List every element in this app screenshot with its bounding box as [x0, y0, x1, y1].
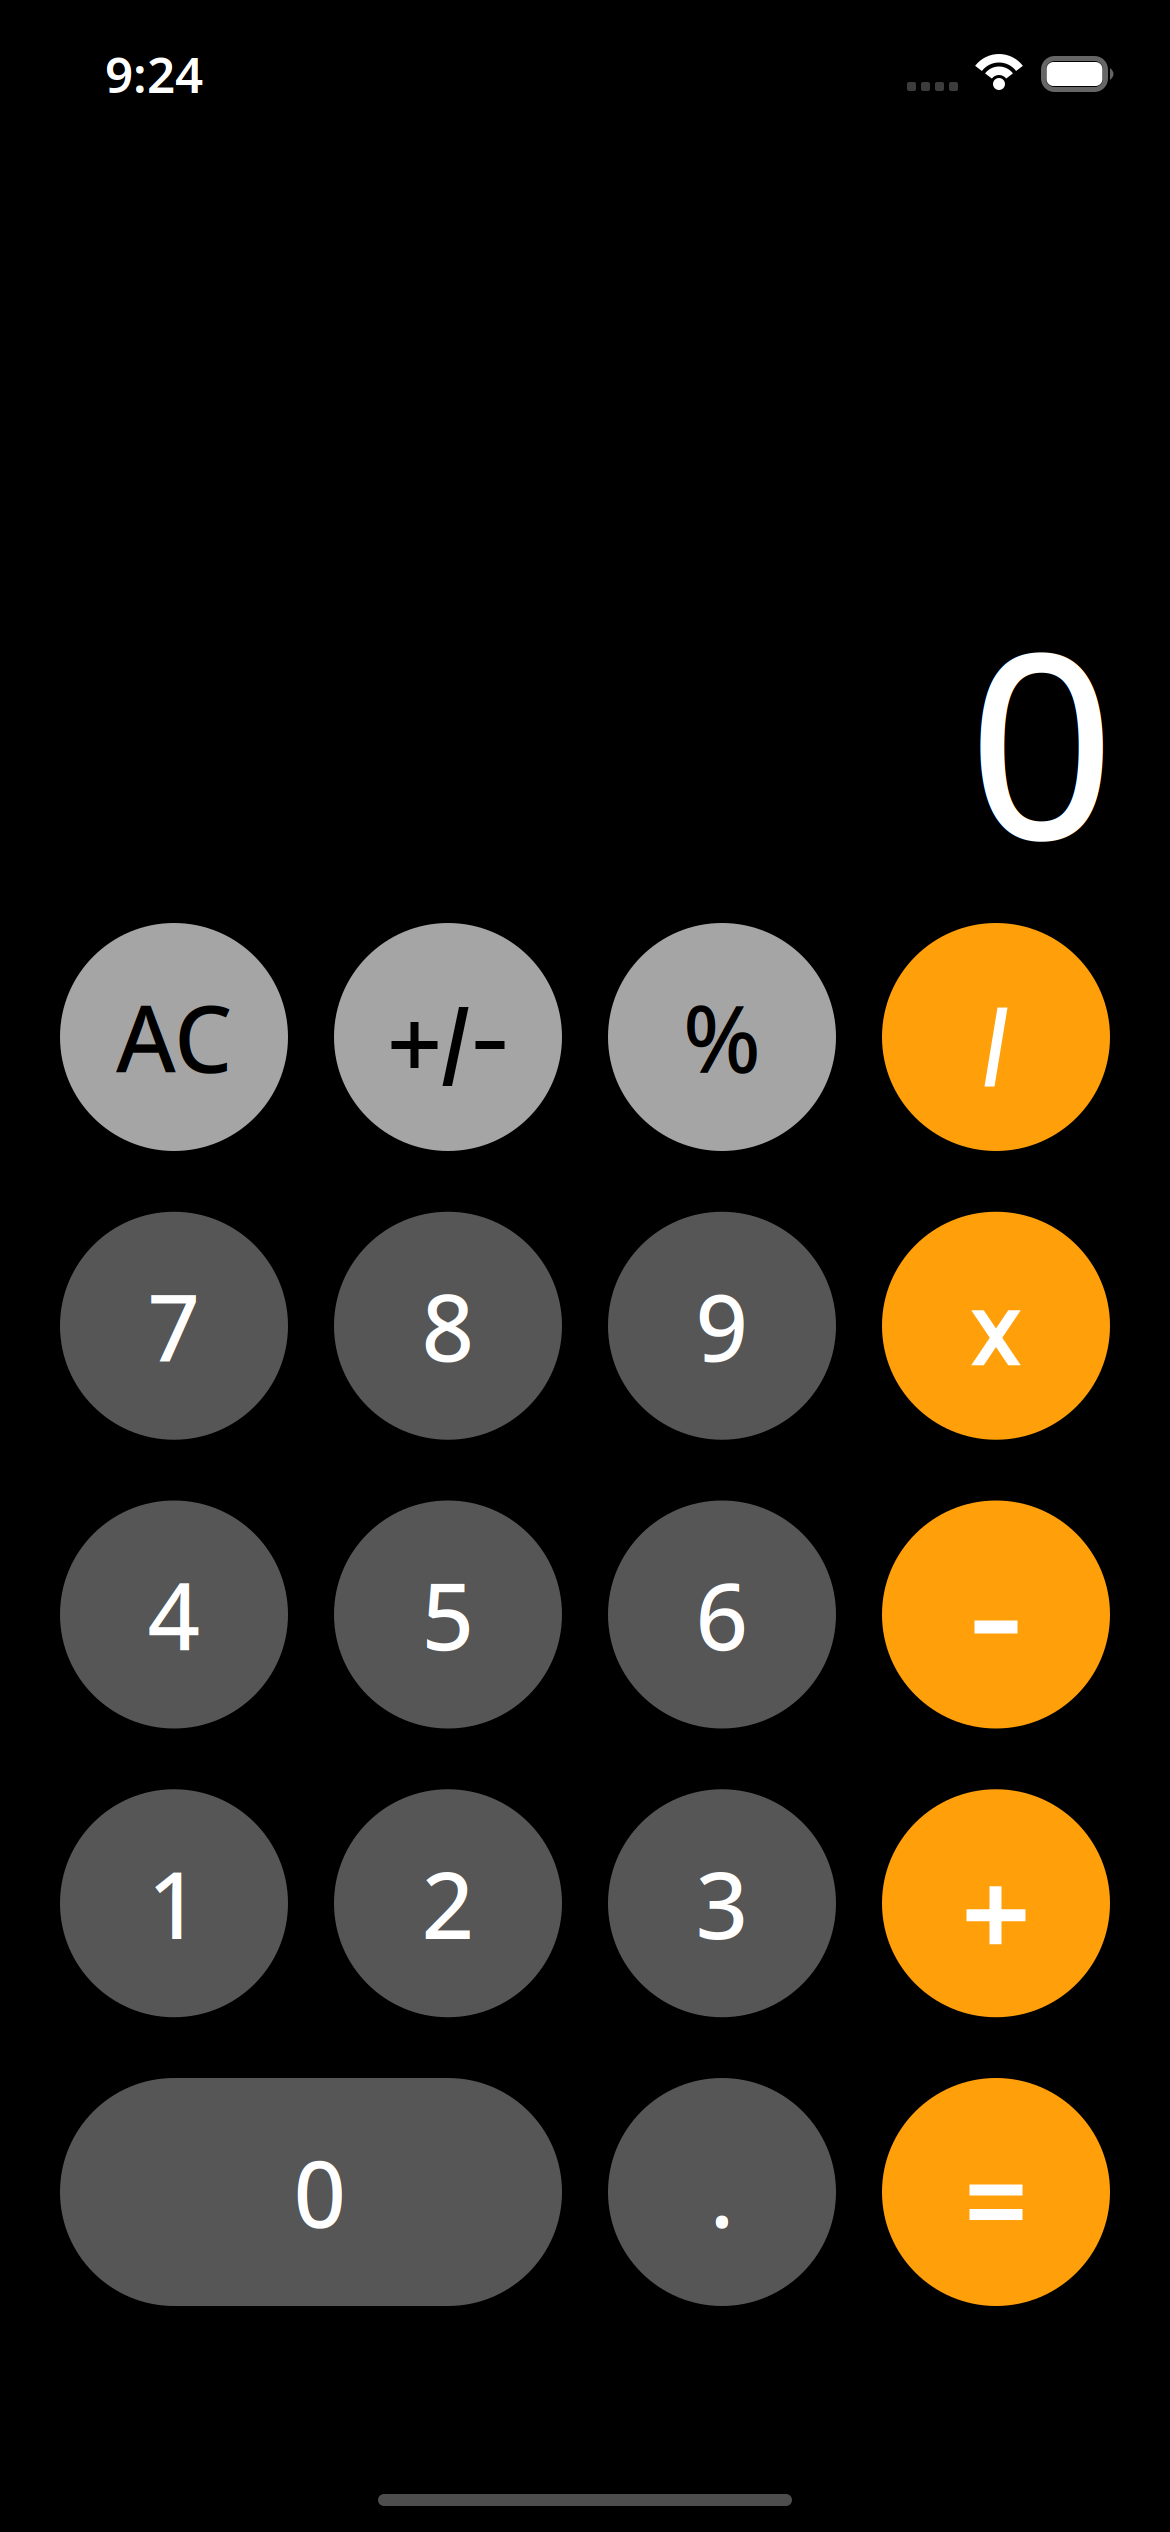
button[interactable]: Equals: [882, 2078, 1110, 2306]
staticText: 4: [147, 1552, 200, 1677]
button[interactable]: All clear: [60, 923, 288, 1151]
button[interactable]: 2: [334, 1789, 562, 2017]
button[interactable]: Multiply: [882, 1212, 1110, 1440]
staticText: 3: [695, 1841, 748, 1966]
staticText: 0: [293, 2129, 346, 2255]
button[interactable]: Decimal point: [608, 2078, 836, 2306]
button[interactable]: 7: [60, 1212, 288, 1440]
button[interactable]: 9: [608, 1212, 836, 1440]
staticText: .: [709, 2129, 734, 2255]
staticText: 6: [695, 1552, 748, 1677]
button[interactable]: 3: [608, 1789, 836, 2017]
button[interactable]: 1: [60, 1789, 288, 2017]
staticText: 7: [147, 1263, 200, 1388]
button[interactable]: Percent: [608, 923, 836, 1151]
button[interactable]: Add: [882, 1789, 1110, 2017]
button[interactable]: 4: [60, 1500, 288, 1728]
staticText: 8: [421, 1263, 474, 1388]
button[interactable]: 6: [608, 1500, 836, 1728]
staticText: 0: [968, 564, 1115, 914]
button[interactable]: 0: [60, 2078, 562, 2306]
button[interactable]: Plus minus: [334, 923, 562, 1151]
button[interactable]: 8: [334, 1212, 562, 1440]
staticText: 2: [421, 1841, 474, 1966]
staticText: AC: [116, 974, 232, 1100]
staticText: 5: [421, 1552, 474, 1677]
button[interactable]: Divide: [882, 923, 1110, 1151]
staticText: 1: [147, 1841, 200, 1966]
staticText: 9:24: [105, 41, 203, 106]
button[interactable]: Subtract: [882, 1500, 1110, 1728]
staticText: 9: [695, 1263, 748, 1388]
button[interactable]: 5: [334, 1500, 562, 1728]
staticText: %: [683, 974, 761, 1100]
